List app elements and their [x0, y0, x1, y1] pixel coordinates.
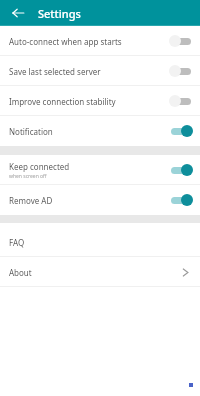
staticText: About — [9, 267, 32, 278]
button[interactable]: Keep connected — [0, 155, 200, 185]
staticText: FAQ — [9, 237, 25, 248]
button[interactable]: Auto-connect when app starts — [0, 26, 200, 56]
button[interactable]: About — [0, 257, 200, 287]
button[interactable]: Remove AD — [0, 185, 200, 215]
staticText: Auto-connect when app starts — [9, 36, 122, 47]
button[interactable]: Improve connection stability — [0, 86, 200, 116]
staticText: Improve connection stability — [9, 96, 116, 107]
staticText: Save last selected server — [9, 66, 101, 77]
staticText: Remove AD — [9, 195, 53, 206]
staticText: Keep connected — [9, 161, 70, 172]
staticText: when screen off — [9, 173, 47, 180]
button[interactable]: Save last selected server — [0, 56, 200, 86]
staticText: Settings — [38, 6, 81, 21]
button[interactable]: FAQ — [0, 227, 200, 257]
staticText: Notification — [9, 126, 53, 137]
button[interactable]: Notification — [0, 116, 200, 146]
button[interactable]: Back — [10, 5, 26, 21]
